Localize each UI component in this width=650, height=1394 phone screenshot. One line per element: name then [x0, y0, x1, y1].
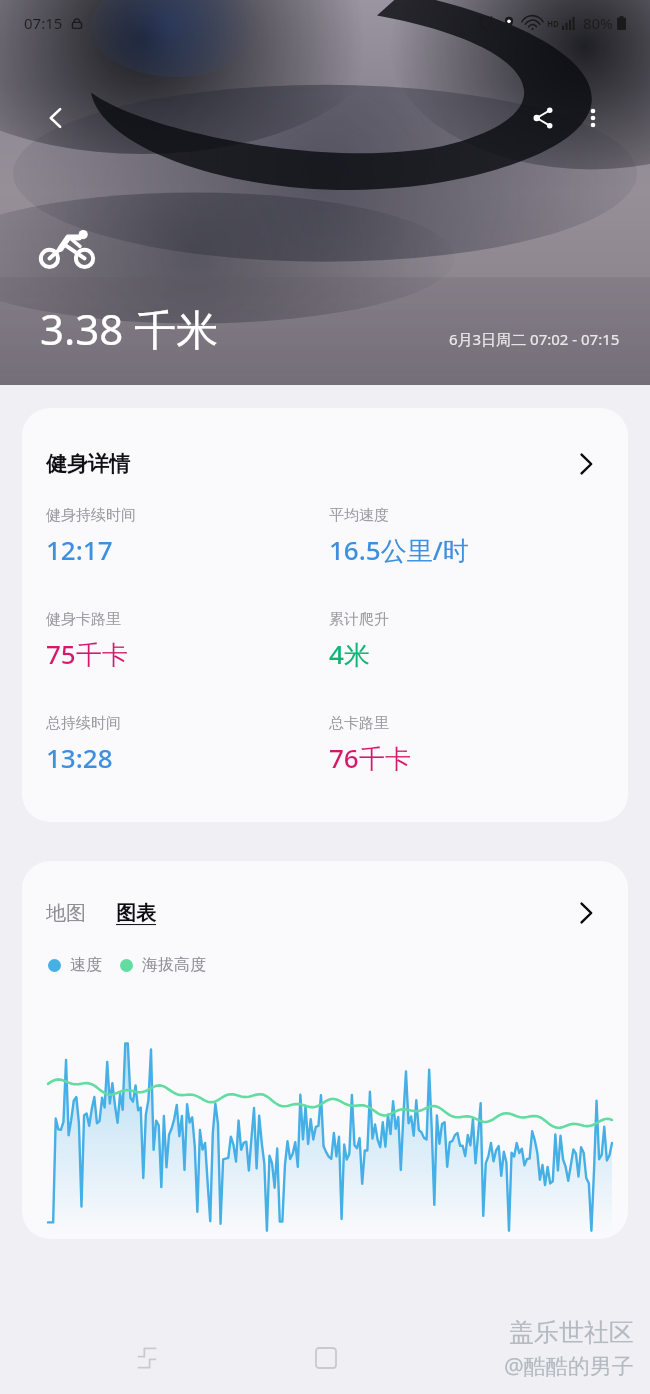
- button[interactable]: 图表: [116, 901, 156, 926]
- staticText: 13:28: [46, 740, 113, 775]
- button[interactable]: 健身详情: [22, 408, 628, 506]
- button[interactable]: 地图: [46, 901, 90, 926]
- staticText: 16.5公里/时: [329, 532, 469, 568]
- staticText: 12:17: [46, 532, 113, 567]
- staticText: @酷酷的男子: [504, 1350, 634, 1380]
- staticText: 健身持续时间: [46, 506, 136, 525]
- staticText: 总卡路里: [329, 714, 389, 733]
- staticText: 健身详情: [46, 451, 130, 477]
- button[interactable]: Recents: [124, 1335, 170, 1381]
- staticText: 累计爬升: [329, 610, 389, 629]
- staticText: 地图: [46, 901, 86, 926]
- button[interactable]: Share: [520, 95, 566, 141]
- staticText: HD: [547, 18, 559, 29]
- staticText: 76千卡: [329, 740, 411, 776]
- staticText: 速度: [70, 955, 102, 975]
- staticText: 75千卡: [46, 636, 128, 672]
- button[interactable]: Home: [303, 1335, 349, 1381]
- staticText: 平均速度: [329, 506, 389, 525]
- button[interactable]: Open chart: [566, 893, 606, 933]
- staticText: 80%: [583, 13, 613, 33]
- staticText: 健身卡路里: [46, 610, 121, 629]
- staticText: 图表: [116, 901, 156, 926]
- button[interactable]: More options: [570, 95, 616, 141]
- staticText: 6月3日周二 07:02 - 07:15: [449, 329, 620, 349]
- staticText: 盖乐世社区: [509, 1317, 634, 1348]
- staticText: 3.38 千米: [40, 300, 219, 357]
- staticText: 07:15: [24, 13, 63, 33]
- staticText: 4米: [329, 636, 370, 672]
- button[interactable]: Back: [34, 96, 78, 140]
- staticText: 总持续时间: [46, 714, 121, 733]
- staticText: 海拔高度: [142, 955, 206, 975]
